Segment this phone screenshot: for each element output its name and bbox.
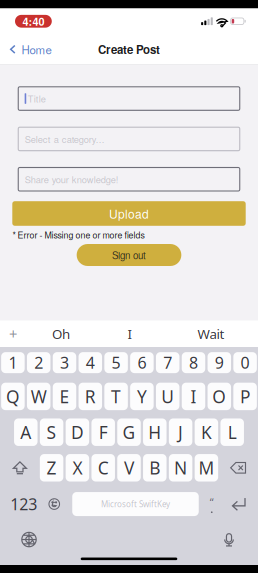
staticText: Sign out	[112, 248, 146, 262]
staticText: G	[122, 421, 135, 444]
button[interactable]: N	[169, 454, 192, 482]
staticText: M	[198, 456, 214, 479]
button[interactable]: Emoji	[42, 492, 66, 516]
button[interactable]: H	[143, 418, 167, 446]
button[interactable]: P	[233, 383, 257, 410]
staticText: +	[9, 324, 17, 344]
button[interactable]: Shift	[2, 454, 37, 482]
staticText: 0	[241, 352, 250, 373]
button[interactable]: Punctuation	[199, 492, 225, 516]
button[interactable]: V	[117, 454, 141, 482]
button[interactable]: B	[143, 454, 166, 482]
button[interactable]: Upload	[12, 201, 246, 226]
staticText: * Error - Missing one or more fields	[12, 228, 144, 241]
button[interactable]: Recording indicator	[15, 15, 52, 28]
staticText: V	[124, 456, 134, 479]
button[interactable]: D	[66, 418, 89, 446]
button[interactable]: Home	[0, 35, 58, 63]
button[interactable]: 123	[5, 492, 42, 516]
staticText: Z	[47, 456, 57, 479]
staticText: 1	[8, 352, 17, 373]
button[interactable]: 6	[130, 352, 154, 373]
staticText: 3	[60, 352, 69, 373]
button[interactable]: 2	[27, 352, 50, 373]
button[interactable]: 8	[182, 352, 205, 373]
button[interactable]: Z	[40, 454, 63, 482]
staticText: I	[127, 325, 132, 343]
button[interactable]: M	[195, 454, 218, 482]
button[interactable]: Delete	[220, 454, 256, 482]
button[interactable]: 4	[79, 352, 102, 373]
button[interactable]: 3	[53, 352, 76, 373]
button[interactable]: U	[156, 383, 179, 410]
staticText: Title	[28, 92, 46, 105]
staticText: U	[161, 385, 174, 408]
button[interactable]: Y	[130, 383, 154, 410]
staticText: Y	[137, 385, 147, 408]
button[interactable]: O	[208, 383, 231, 410]
button[interactable]: J	[169, 418, 192, 446]
staticText: Oh	[52, 325, 70, 343]
staticText: S	[47, 421, 57, 444]
button[interactable]: W	[27, 383, 50, 410]
button[interactable]: T	[104, 383, 128, 410]
staticText: E	[59, 385, 69, 408]
button[interactable]: Return	[225, 492, 253, 516]
button[interactable]: 5	[104, 352, 128, 373]
button[interactable]: S	[40, 418, 63, 446]
button[interactable]: Dictate	[217, 530, 241, 550]
button[interactable]: 0	[233, 352, 257, 373]
staticText: 2	[34, 352, 43, 373]
button[interactable]: A	[14, 418, 37, 446]
button[interactable]: 7	[156, 352, 179, 373]
staticText: 6	[137, 352, 146, 373]
staticText: Home	[22, 41, 52, 57]
button[interactable]: I	[96, 321, 164, 347]
button[interactable]: Sign out	[77, 244, 181, 266]
staticText: T	[111, 385, 121, 408]
staticText: N	[174, 456, 187, 479]
button[interactable]: Oh	[26, 321, 96, 347]
button[interactable]: Switch keyboard	[17, 530, 41, 550]
button[interactable]: C	[91, 454, 115, 482]
staticText: Select a category...	[25, 132, 105, 146]
button[interactable]: K	[195, 418, 218, 446]
button[interactable]: I	[182, 383, 205, 410]
staticText: 7	[163, 352, 172, 373]
button[interactable]: 1	[1, 352, 25, 373]
button[interactable]: Microsoft SwiftKey	[72, 492, 199, 516]
button[interactable]: Wait	[164, 321, 258, 347]
button[interactable]: E	[53, 383, 76, 410]
staticText: Microsoft SwiftKey	[101, 499, 170, 509]
button[interactable]: Q	[1, 383, 25, 410]
staticText: Upload	[109, 205, 149, 222]
staticText: C	[98, 456, 109, 479]
staticText: L	[228, 421, 237, 444]
staticText: W	[31, 385, 47, 408]
button[interactable]: R	[79, 383, 102, 410]
button[interactable]: Add	[0, 321, 26, 347]
staticText: 4	[86, 352, 95, 373]
button[interactable]: F	[91, 418, 115, 446]
staticText: 4:40	[22, 13, 44, 29]
staticText: 5	[112, 352, 121, 373]
staticText: X	[72, 456, 82, 479]
button[interactable]: 9	[208, 352, 231, 373]
staticText: 123	[10, 493, 37, 515]
button[interactable]: L	[220, 418, 244, 446]
staticText: J	[178, 421, 183, 444]
staticText: A	[20, 421, 31, 444]
staticText: I	[190, 385, 196, 408]
button[interactable]: G	[117, 418, 141, 446]
staticText: D	[71, 421, 84, 444]
staticText: O	[212, 385, 226, 408]
staticText: B	[149, 456, 160, 479]
staticText: F	[99, 421, 108, 444]
staticText: 9	[215, 352, 224, 373]
staticText: K	[201, 421, 212, 444]
button[interactable]: X	[66, 454, 89, 482]
staticText: R	[85, 385, 96, 408]
staticText: Share your knowledge!	[25, 173, 119, 186]
staticText: Wait	[197, 325, 224, 343]
staticText: 8	[189, 352, 198, 373]
